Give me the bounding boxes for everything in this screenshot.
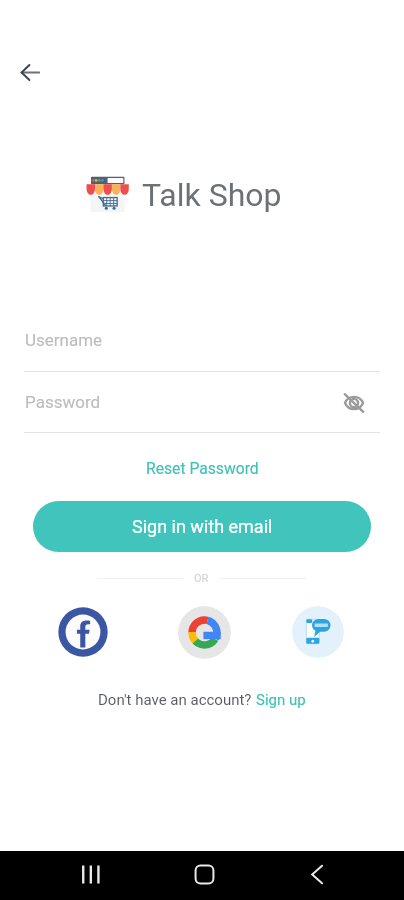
staticText: Password — [25, 392, 101, 412]
button[interactable]: Home — [176, 851, 232, 898]
button[interactable]: Sign in with Google — [178, 606, 231, 659]
button[interactable]: Show password — [337, 386, 371, 420]
button[interactable]: Back — [10, 52, 50, 92]
button[interactable]: Back — [289, 851, 345, 898]
staticText: Username — [25, 330, 103, 350]
button[interactable]: Sign in with Facebook — [57, 606, 109, 658]
staticText: Talk Shop — [142, 176, 282, 214]
button[interactable]: Sign in with SMS — [292, 606, 344, 658]
button[interactable]: Reset Password — [140, 456, 265, 480]
button[interactable]: Sign in with email — [33, 501, 371, 552]
staticText: Sign in with email — [132, 516, 273, 537]
staticText: Don't have an account? — [98, 691, 256, 709]
button[interactable]: Recents — [62, 851, 118, 898]
button[interactable]: Sign up — [256, 691, 306, 709]
staticText: OR — [194, 572, 209, 585]
